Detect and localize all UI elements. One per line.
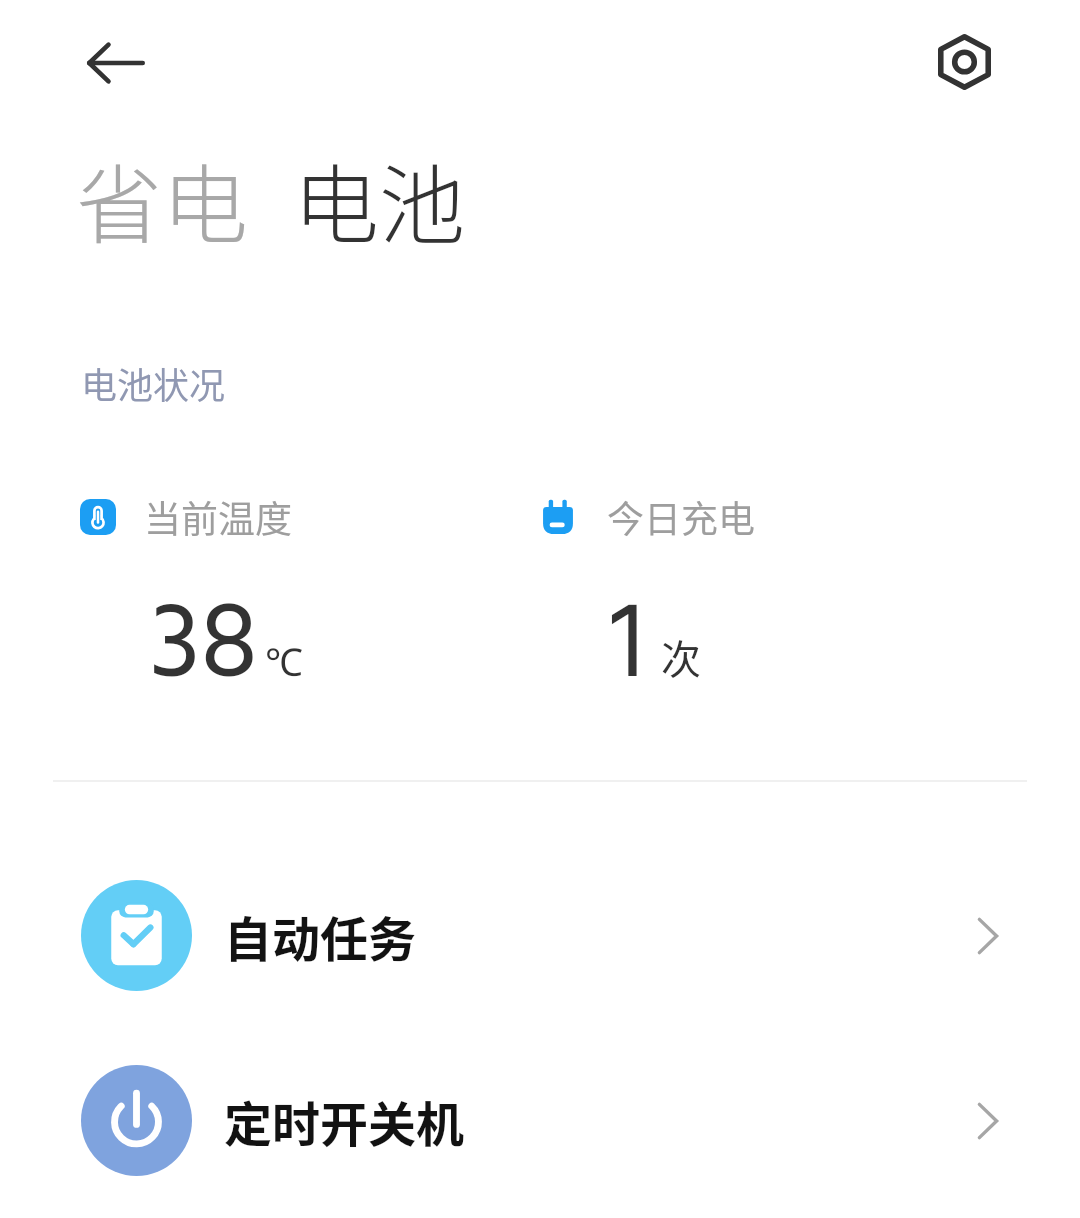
staticText: 电池: [293, 137, 465, 262]
staticText: 次: [661, 628, 701, 686]
button[interactable]: 自动任务: [0, 880, 1080, 991]
staticText: 38: [150, 562, 259, 735]
staticText: 自动任务: [224, 901, 417, 971]
staticText: ℃: [265, 635, 303, 687]
button[interactable]: 定时开关机: [0, 1065, 1080, 1176]
button[interactable]: Back: [68, 15, 164, 111]
staticText: 当前温度: [144, 490, 292, 544]
staticText: 电池状况: [81, 357, 226, 409]
staticText: 今日充电: [607, 490, 755, 544]
button[interactable]: 电池: [281, 125, 477, 274]
button[interactable]: 省电: [64, 125, 260, 274]
staticText: 定时开关机: [224, 1086, 465, 1156]
staticText: 省电: [76, 137, 248, 262]
button[interactable]: Settings: [916, 14, 1012, 110]
staticText: 1: [610, 562, 645, 735]
